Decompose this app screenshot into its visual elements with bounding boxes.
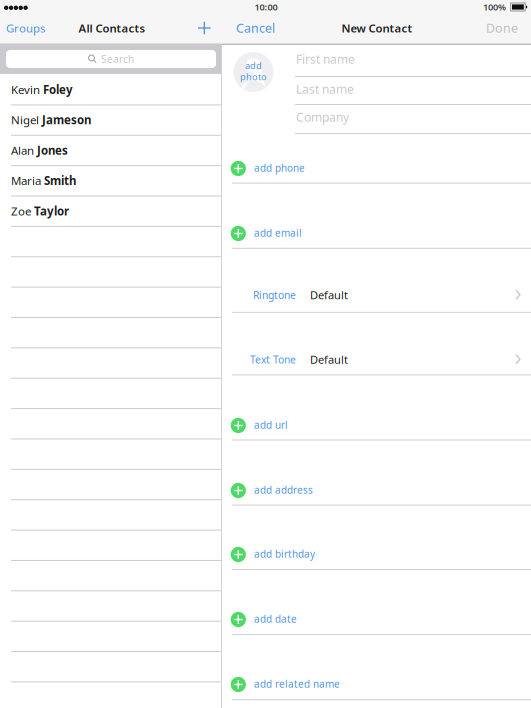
button[interactable]: Done <box>464 15 518 41</box>
staticText: add phone <box>254 161 305 175</box>
button[interactable]: Search <box>6 50 216 68</box>
button[interactable]: Nigel Jameson <box>11 109 221 131</box>
staticText: New Contact <box>341 20 412 36</box>
button[interactable]: Text Tone <box>232 348 531 370</box>
staticText: Nigel Jameson <box>11 112 91 127</box>
button[interactable]: add address <box>232 479 531 501</box>
button[interactable]: Cancel <box>236 15 298 41</box>
button[interactable]: add birthday <box>232 543 531 565</box>
button[interactable]: Zoe Taylor <box>11 200 221 222</box>
staticText: Last name <box>296 81 354 97</box>
button[interactable]: Add contact <box>191 15 217 41</box>
staticText: Cancel <box>236 20 275 36</box>
staticText: All Contacts <box>78 20 145 36</box>
button[interactable]: Groups <box>6 15 68 41</box>
staticText: 100% <box>483 1 506 13</box>
staticText: 10:00 <box>254 1 277 13</box>
staticText: add address <box>254 483 313 497</box>
staticText: Done <box>486 20 518 36</box>
staticText: add url <box>254 418 288 432</box>
button[interactable]: add url <box>232 414 531 436</box>
staticText: add email <box>254 226 302 240</box>
staticText: Ringtone <box>253 288 296 302</box>
staticText: Groups <box>6 20 45 36</box>
staticText: Search <box>101 52 134 66</box>
staticText: Default <box>310 287 348 303</box>
button[interactable]: Alan Jones <box>11 139 221 161</box>
staticText: Default <box>310 352 348 367</box>
button[interactable]: add <box>233 52 273 92</box>
button[interactable]: add phone <box>232 157 531 179</box>
staticText: Alan Jones <box>11 143 68 158</box>
button[interactable]: add related name <box>232 673 531 695</box>
staticText: add birthday <box>254 547 315 561</box>
staticText: add related name <box>254 677 340 691</box>
button[interactable]: add email <box>232 222 531 244</box>
staticText: Text Tone <box>250 352 296 366</box>
button[interactable]: add date <box>232 608 531 630</box>
staticText: photo <box>240 70 267 83</box>
staticText: First name <box>296 51 355 67</box>
staticText: add date <box>254 612 297 626</box>
staticText: add <box>245 59 262 72</box>
staticText: Zoe Taylor <box>11 203 69 219</box>
button[interactable]: Ringtone <box>232 284 531 306</box>
staticText: Maria Smith <box>11 173 76 188</box>
button[interactable]: Maria Smith <box>11 170 221 192</box>
button[interactable]: Kevin Foley <box>11 78 221 100</box>
staticText: Kevin Foley <box>11 82 73 97</box>
staticText: Company <box>296 109 349 125</box>
